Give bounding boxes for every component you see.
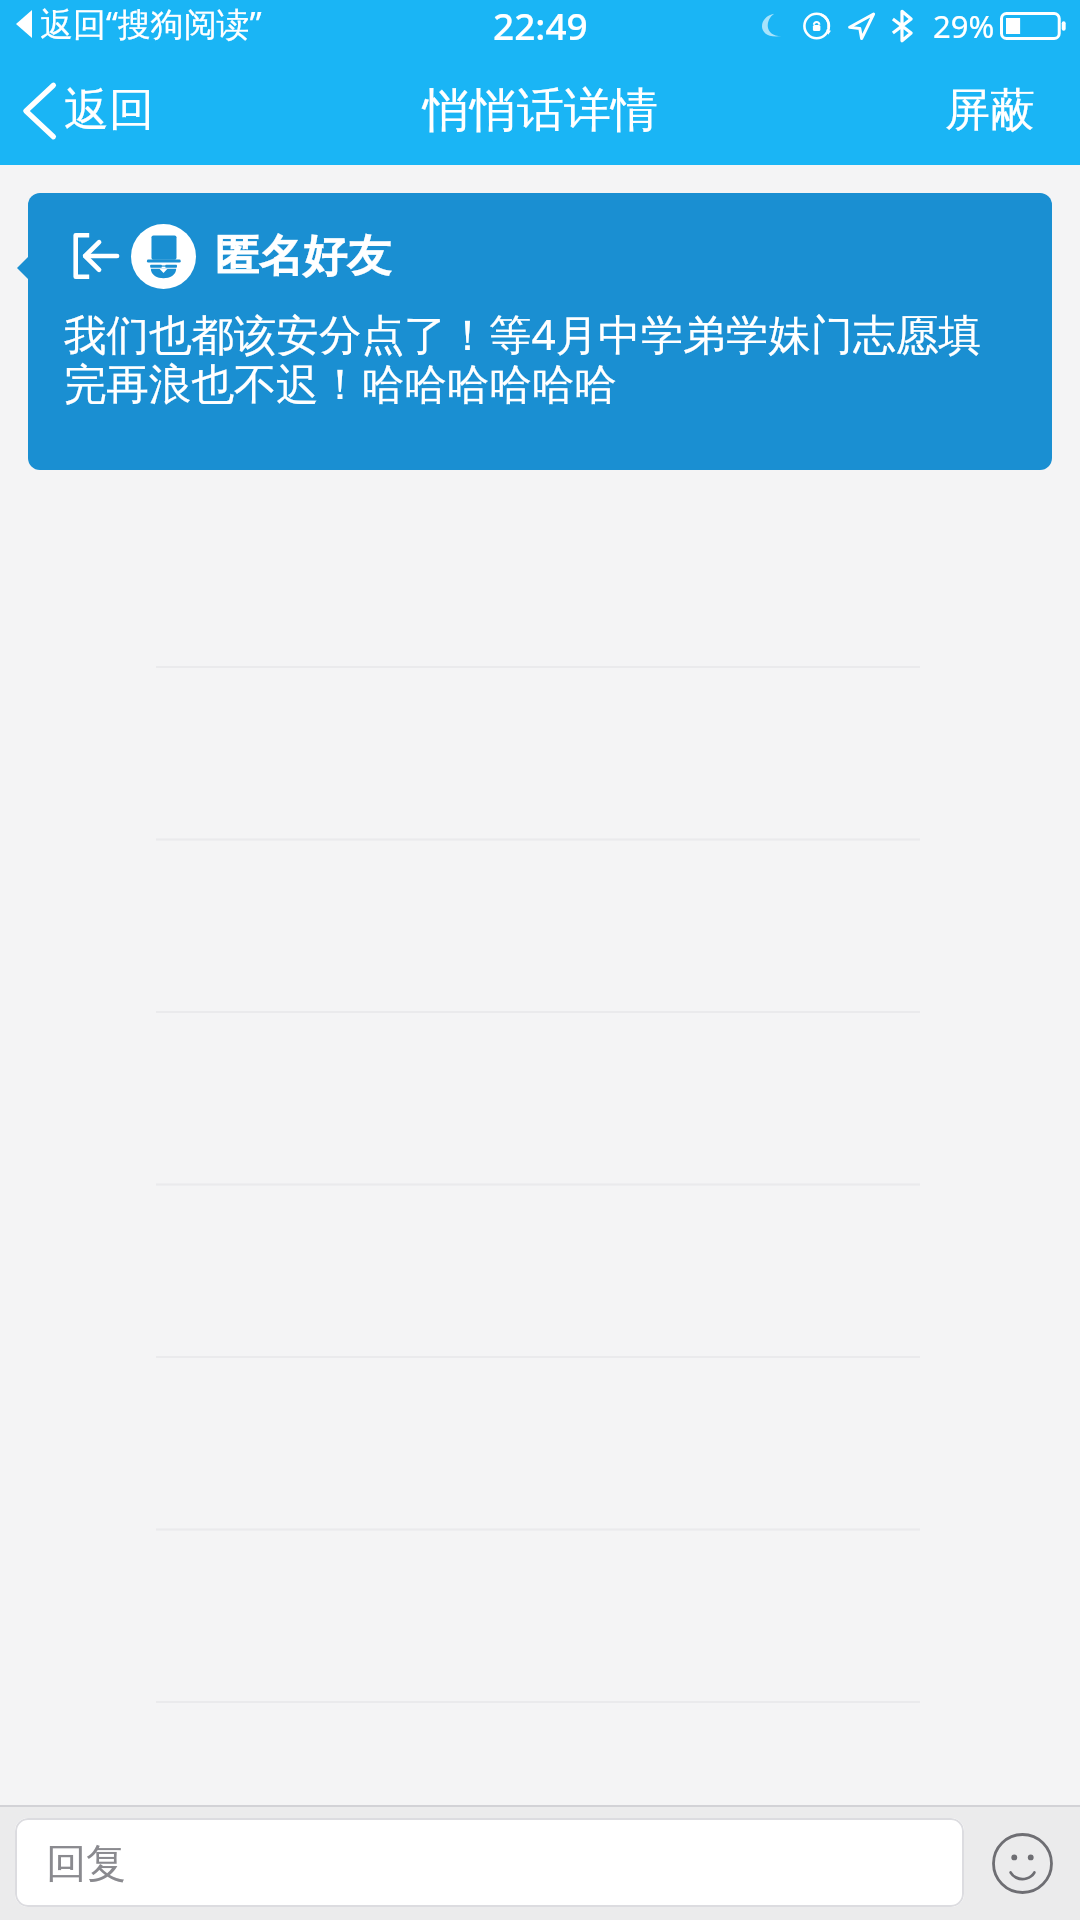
staticText: 返回“搜狗阅读” xyxy=(40,1,262,46)
staticText: 悄悄话详情 xyxy=(423,81,658,140)
staticText: 匿名好友 xyxy=(215,229,391,284)
staticText: 回复 xyxy=(46,1838,126,1888)
staticText: 屏蔽 xyxy=(945,82,1035,139)
button[interactable]: 返回 xyxy=(0,72,170,149)
button[interactable]: 匿名好友 xyxy=(28,193,1052,470)
staticText: 22:49 xyxy=(493,0,588,50)
button[interactable]: 屏蔽 xyxy=(915,66,1080,155)
button[interactable]: 回复 xyxy=(15,1818,964,1907)
button[interactable]: Emoji xyxy=(988,1829,1056,1897)
staticText: 我们也都该安分点了！等4月中学弟学妹门志愿填完再浪也不迟！哈哈哈哈哈哈 xyxy=(64,305,1011,411)
staticText: 29% xyxy=(933,5,995,47)
button[interactable]: 返回“搜狗阅读” xyxy=(0,1,262,46)
staticText: 返回 xyxy=(64,82,154,139)
